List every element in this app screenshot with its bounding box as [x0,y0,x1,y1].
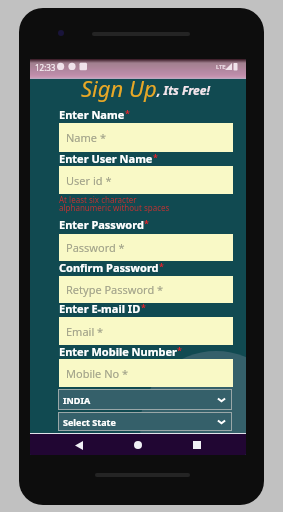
staticText: Enter Password [59,217,144,232]
button[interactable]: INDIA [58,389,232,410]
staticText: Enter Name [59,107,125,122]
button[interactable]: Recents [187,435,207,455]
staticText: Confirm Password [59,260,159,275]
button[interactable]: Name * [59,123,233,152]
button[interactable]: Mobile No * [59,359,233,387]
staticText: At least six character alphanumeric with… [59,194,170,213]
button[interactable]: Back [69,435,89,455]
staticText: * [141,301,146,313]
staticText: LTE [216,63,226,71]
staticText: * [153,151,158,163]
staticText: Enter User Name [59,151,153,166]
staticText: Email * [66,324,104,339]
staticText: * [159,260,164,272]
staticText: * [144,217,149,229]
staticText: Sign Up [81,73,157,103]
staticText: Retype Password * [66,282,164,297]
button[interactable]: Select State [58,412,232,431]
button[interactable]: Retype Password * [59,276,233,303]
staticText: Password * [66,240,125,255]
staticText: 12:33 [35,62,56,73]
button[interactable]: User id * [59,166,233,194]
staticText: User id * [66,173,112,188]
staticText: Select State [63,416,116,428]
staticText: Enter Mobile Number [59,344,177,359]
button[interactable]: Email * [59,317,233,345]
staticText: Mobile No * [66,366,129,381]
staticText: * [177,344,182,356]
button[interactable]: Password * [59,234,233,261]
staticText: , Its Free! [157,82,210,98]
staticText: Enter E-mail ID [59,301,141,316]
staticText: Name * [66,130,106,145]
button[interactable]: Home [128,435,148,455]
staticText: * [125,107,130,119]
staticText: INDIA [63,394,91,406]
